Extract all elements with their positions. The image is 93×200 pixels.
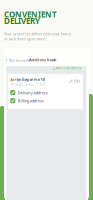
staticText: Jurija Gagarina 14 bbox=[11, 76, 45, 82]
staticText: Delivery address bbox=[18, 90, 48, 95]
staticText: or pick them up in store. bbox=[4, 36, 46, 41]
staticText: Address book bbox=[29, 57, 56, 62]
staticText: Your groceries delivered to your home bbox=[4, 31, 71, 36]
button[interactable]: My account bbox=[5, 57, 29, 63]
staticText: Billing address bbox=[18, 98, 44, 103]
button[interactable]: + bbox=[53, 65, 81, 71]
staticText: Edit bbox=[74, 78, 80, 83]
staticText: + bbox=[53, 65, 55, 71]
staticText: Belgrade, Serbia, 11000 bbox=[11, 83, 46, 86]
staticText: DELIVERY bbox=[4, 15, 40, 26]
staticText: CONVENIENT bbox=[4, 9, 57, 20]
staticText: Add a new address bbox=[56, 66, 81, 70]
staticText: My account bbox=[9, 57, 29, 63]
button[interactable]: Jurija Gagarina 14 bbox=[8, 74, 83, 109]
